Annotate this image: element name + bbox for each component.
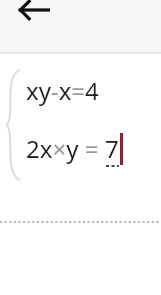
button[interactable]: xy-x=4 [0,66,161,184]
staticText: 7 [105,132,119,165]
staticText: 2x×y = [26,132,105,165]
staticText: xy-x=4 [26,74,99,107]
button[interactable]: Back [14,0,54,30]
